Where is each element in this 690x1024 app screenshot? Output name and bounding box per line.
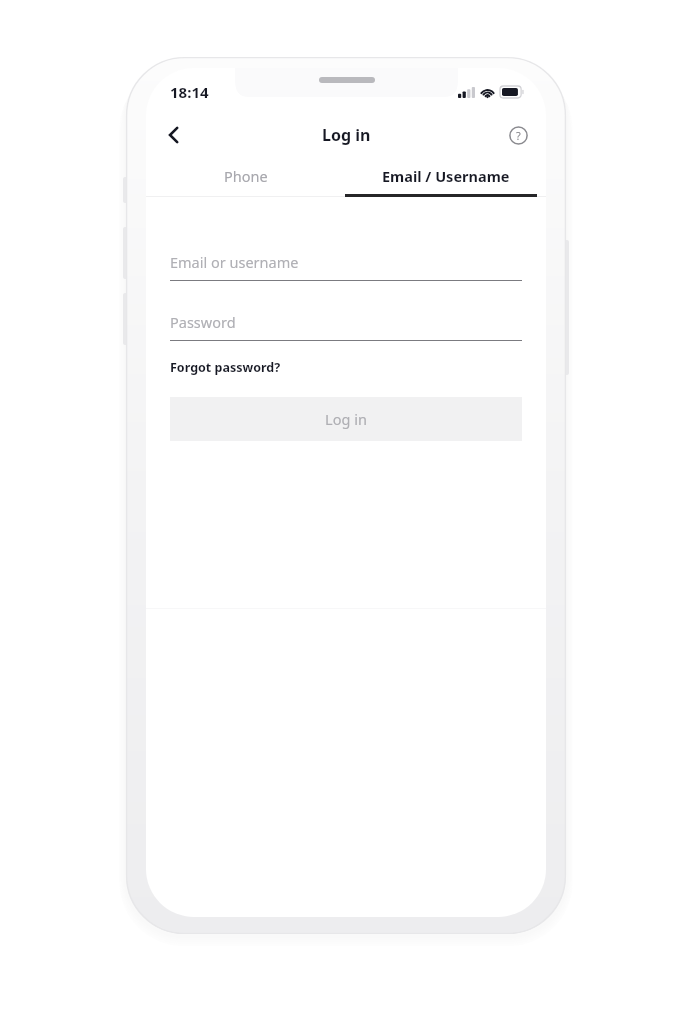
staticText: Log in	[322, 124, 371, 146]
button[interactable]: Help	[496, 113, 540, 157]
button[interactable]: Password	[170, 304, 522, 340]
staticText: 18:14	[170, 82, 209, 102]
staticText: Forgot password?	[170, 359, 281, 376]
staticText: Log in	[325, 409, 367, 429]
button[interactable]: Log in	[170, 397, 522, 441]
staticText: Email or username	[170, 252, 299, 272]
staticText: Email / Username	[382, 166, 510, 186]
staticText: Phone	[224, 166, 268, 186]
staticText: ?	[516, 128, 521, 143]
button[interactable]: Back	[152, 113, 196, 157]
staticText: Password	[170, 312, 236, 332]
button[interactable]: Phone	[146, 157, 346, 194]
button[interactable]: Email or username	[170, 244, 522, 280]
button[interactable]: Forgot password?	[170, 359, 281, 376]
button[interactable]: Email / Username	[346, 157, 546, 194]
